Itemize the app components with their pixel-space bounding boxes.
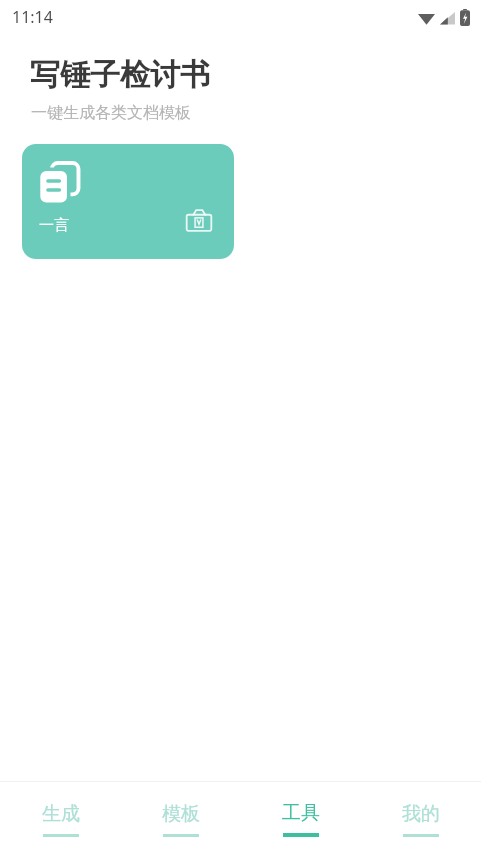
- button[interactable]: 生成: [0, 782, 121, 856]
- staticText: 一言: [39, 216, 69, 235]
- staticText: 模板: [162, 802, 200, 826]
- staticText: 11:14: [12, 6, 53, 28]
- button[interactable]: 工具: [241, 782, 361, 856]
- staticText: 工具: [282, 801, 320, 825]
- staticText: 我的: [402, 802, 440, 826]
- button[interactable]: 模板: [121, 782, 241, 856]
- staticText: 写锤子检讨书: [30, 56, 210, 94]
- staticText: 生成: [42, 802, 80, 826]
- button[interactable]: 一言: [22, 144, 234, 259]
- button[interactable]: 我的: [361, 782, 481, 856]
- staticText: 一键生成各类文档模板: [31, 103, 191, 123]
